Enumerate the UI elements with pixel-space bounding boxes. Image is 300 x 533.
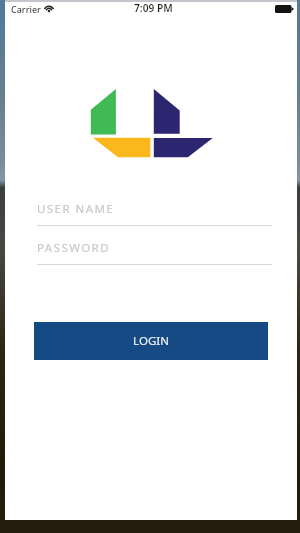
button[interactable]: LOGIN bbox=[34, 322, 268, 360]
staticText: 7:09 PM bbox=[134, 1, 173, 15]
staticText: LOGIN bbox=[133, 333, 169, 349]
button[interactable]: USER NAME bbox=[37, 194, 272, 226]
button[interactable]: PASSWORD bbox=[37, 233, 272, 265]
staticText: Carrier bbox=[11, 3, 41, 15]
other: Battery full bbox=[275, 5, 294, 13]
staticText: PASSWORD bbox=[37, 240, 111, 256]
staticText: USER NAME bbox=[37, 201, 115, 217]
other: Wi-Fi signal bbox=[44, 3, 55, 13]
